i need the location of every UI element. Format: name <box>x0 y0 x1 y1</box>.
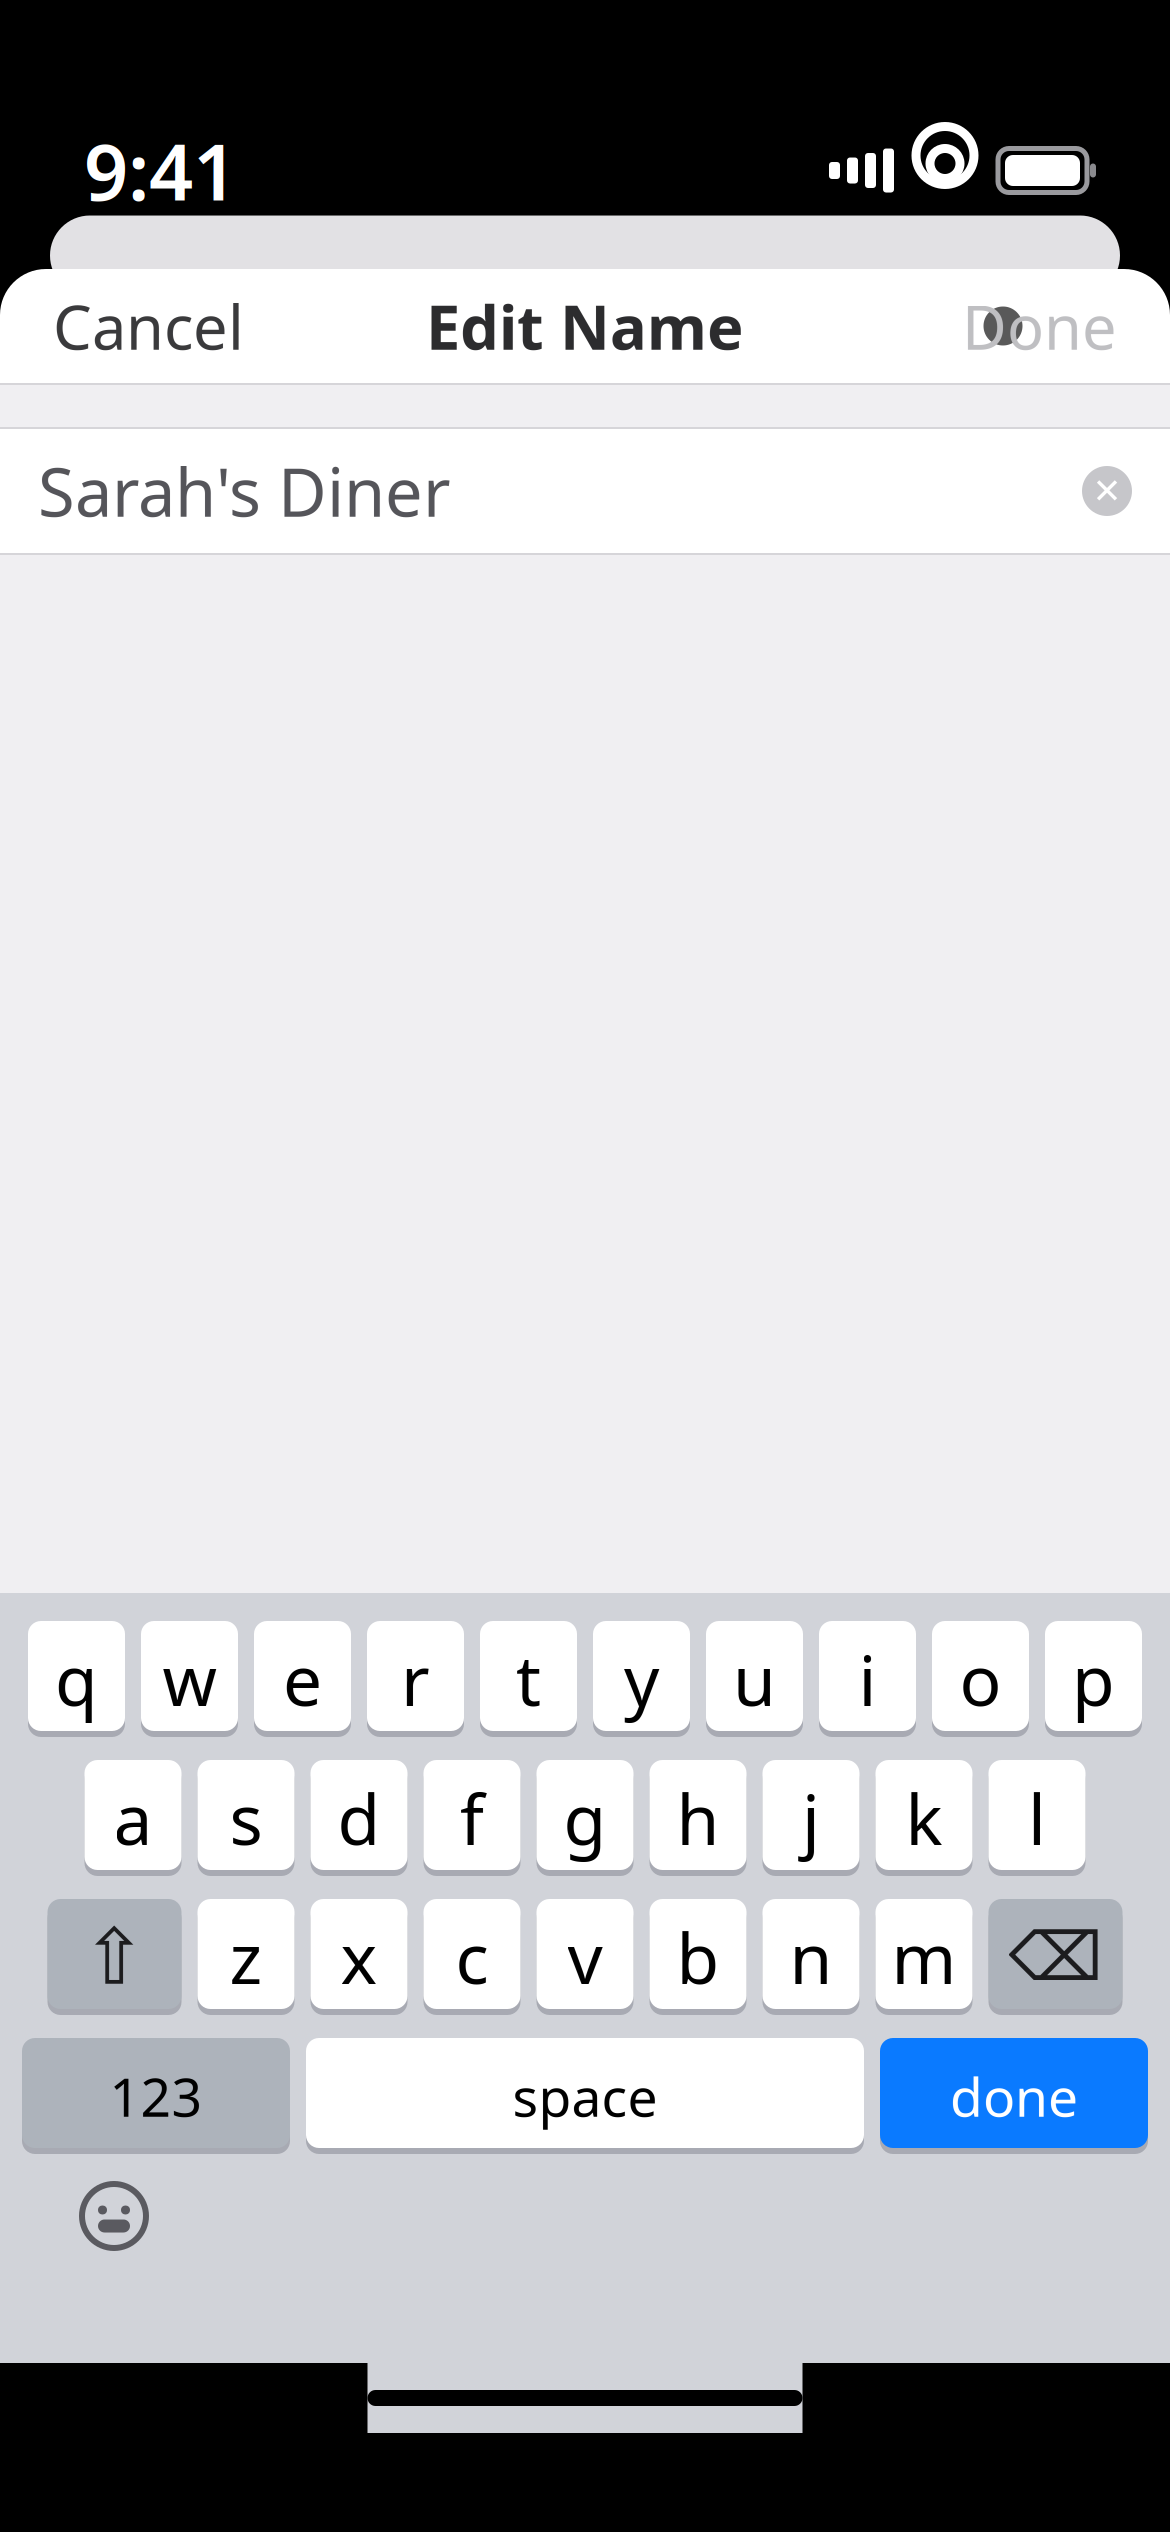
button[interactable]: 123 <box>22 2038 290 2154</box>
button[interactable]: Shift <box>47 1899 181 2015</box>
button[interactable]: s <box>197 1760 294 1876</box>
staticText: 9:41 <box>84 119 237 222</box>
staticText: t <box>516 1633 541 1725</box>
button[interactable]: space <box>306 2038 864 2154</box>
staticText: Edit Name <box>426 285 744 367</box>
button[interactable]: j <box>762 1760 859 1876</box>
button[interactable]: x <box>310 1899 407 2015</box>
button[interactable]: k <box>875 1760 972 1876</box>
button[interactable]: f <box>423 1760 520 1876</box>
staticText: i <box>858 1633 876 1725</box>
staticText: b <box>676 1911 719 2003</box>
button[interactable]: q <box>28 1621 125 1737</box>
button[interactable]: m <box>875 1899 972 2015</box>
staticText: space <box>512 2061 657 2131</box>
button[interactable]: h <box>649 1760 746 1876</box>
staticText: ✕ <box>1092 471 1121 511</box>
staticText: l <box>1028 1772 1046 1864</box>
staticText: g <box>563 1772 606 1864</box>
button[interactable]: n <box>762 1899 859 2015</box>
button[interactable]: b <box>649 1899 746 2015</box>
staticText: 123 <box>109 2061 202 2131</box>
button[interactable]: Emoji keyboard <box>52 2168 176 2264</box>
staticText: k <box>905 1772 942 1864</box>
button[interactable]: e <box>254 1621 351 1737</box>
button[interactable]: Cancel <box>37 263 260 389</box>
button[interactable]: d <box>310 1760 407 1876</box>
staticText: a <box>113 1772 152 1864</box>
staticText: e <box>283 1633 322 1725</box>
staticText: u <box>733 1633 776 1725</box>
staticText: c <box>455 1911 488 2003</box>
button[interactable]: u <box>706 1621 803 1737</box>
staticText: ⇧ <box>82 1913 147 2001</box>
button[interactable]: Delete <box>988 1899 1122 2015</box>
button[interactable]: g <box>536 1760 633 1876</box>
staticText: done <box>950 2061 1078 2131</box>
button[interactable]: y <box>593 1621 690 1737</box>
staticText: w <box>162 1633 216 1725</box>
button[interactable]: Done <box>946 263 1133 389</box>
button[interactable]: a <box>84 1760 181 1876</box>
staticText: f <box>460 1772 484 1864</box>
staticText: x <box>340 1911 377 2003</box>
button[interactable]: o <box>932 1621 1029 1737</box>
button[interactable]: i <box>819 1621 916 1737</box>
staticText: n <box>789 1911 832 2003</box>
staticText: y <box>624 1633 659 1725</box>
staticText: Cancel <box>53 285 244 367</box>
staticText: h <box>676 1772 719 1864</box>
staticText: Sarah's Diner <box>38 447 451 535</box>
staticText: q <box>55 1633 98 1725</box>
staticText: j <box>802 1772 820 1864</box>
button[interactable]: t <box>480 1621 577 1737</box>
staticText: ⌫ <box>1008 1919 1102 1995</box>
button[interactable]: r <box>367 1621 464 1737</box>
staticText: Done <box>962 285 1117 367</box>
button[interactable]: c <box>423 1899 520 2015</box>
staticText: m <box>891 1911 956 2003</box>
button[interactable]: done <box>880 2038 1148 2154</box>
button[interactable]: z <box>197 1899 294 2015</box>
staticText: v <box>567 1911 602 2003</box>
button[interactable]: w <box>141 1621 238 1737</box>
button[interactable]: l <box>988 1760 1085 1876</box>
staticText: d <box>337 1772 380 1864</box>
staticText: o <box>959 1633 1001 1725</box>
button[interactable]: v <box>536 1899 633 2015</box>
staticText: s <box>229 1772 262 1864</box>
button[interactable]: p <box>1045 1621 1142 1737</box>
button[interactable]: Clear text <box>1070 454 1144 528</box>
staticText: r <box>401 1633 430 1725</box>
staticText: p <box>1072 1633 1115 1725</box>
staticText: z <box>229 1911 262 2003</box>
